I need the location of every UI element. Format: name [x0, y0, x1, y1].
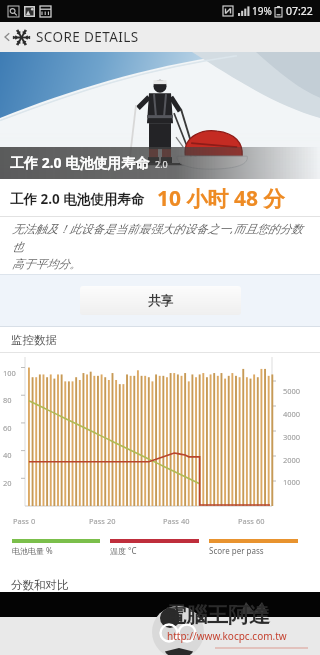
staticText: Pass 20: [89, 516, 116, 526]
staticText: 80: [3, 395, 12, 405]
staticText: 无法触及！此设备是当前最强大的设备之一,而且您的分数也 高于平均分。: [12, 221, 310, 271]
staticText: 电池电量 %: [12, 545, 53, 556]
staticText: 4000: [283, 409, 301, 419]
staticText: 3000: [283, 432, 301, 442]
staticText: 温度 °C: [110, 545, 137, 556]
staticText: 10 小时 48 分: [157, 184, 285, 213]
staticText: 19%: [252, 4, 272, 18]
staticText: 5000: [283, 386, 301, 396]
staticText: 工作 2.0 电池使用寿命: [10, 190, 145, 208]
other: Back: [2, 32, 12, 42]
staticText: 100: [3, 368, 16, 378]
staticText: 2000: [283, 455, 301, 465]
staticText: 40: [3, 450, 12, 460]
staticText: Pass 60: [238, 516, 265, 526]
staticText: Pass 0: [13, 516, 36, 526]
staticText: http://www.kocpc.com.tw: [167, 629, 287, 643]
button[interactable]: 共享: [80, 286, 241, 315]
staticText: 共享: [148, 293, 173, 309]
staticText: Score per pass: [209, 545, 264, 556]
staticText: 07:22: [286, 4, 313, 18]
staticText: 分数和对比: [11, 578, 69, 592]
staticText: 60: [3, 423, 12, 433]
staticText: 電腦王阿達: [165, 602, 270, 628]
staticText: SCORE DETAILS: [36, 28, 139, 46]
staticText: 1000: [283, 477, 301, 487]
staticText: Pass 40: [163, 516, 190, 526]
staticText: 工作 2.0 电池使用寿命: [10, 153, 150, 172]
staticText: 20: [3, 478, 12, 488]
staticText: 2.0: [155, 158, 168, 170]
button[interactable]: Back: [2, 28, 139, 46]
staticText: 监控数据: [11, 333, 57, 347]
